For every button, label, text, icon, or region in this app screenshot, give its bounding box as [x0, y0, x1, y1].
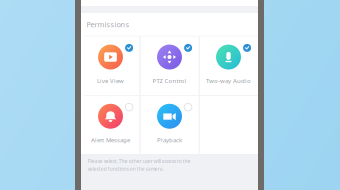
staticText: Please select. The other user will acces… [88, 158, 191, 164]
staticText: Playback [157, 136, 182, 144]
staticText: selected functions on the camera. [88, 166, 164, 172]
button[interactable]: PTZ Control [140, 36, 199, 95]
staticText: Live View [97, 77, 124, 85]
staticText: Two-way Audio [206, 77, 251, 85]
button[interactable]: Alert Message [81, 96, 140, 154]
staticText: PTZ Control [152, 77, 186, 85]
button[interactable]: Two-way Audio [199, 36, 258, 95]
button[interactable]: Live View [81, 36, 140, 95]
staticText: Permissions [87, 19, 130, 29]
staticText: Alert Message [91, 136, 130, 144]
button[interactable]: Playback [140, 96, 199, 154]
